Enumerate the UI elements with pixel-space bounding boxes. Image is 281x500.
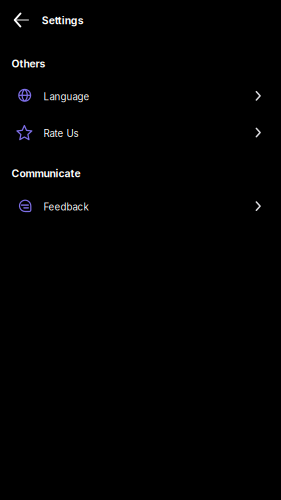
staticText: Rate Us [44,127,79,139]
staticText: Others [11,57,45,70]
button[interactable]: Feedback [0,188,281,224]
staticText: Language [44,91,90,103]
button[interactable]: Language [0,77,281,114]
button[interactable]: Back [8,6,36,34]
button[interactable]: Rate Us [0,114,281,151]
staticText: Feedback [44,201,89,213]
staticText: Communicate [11,167,80,180]
staticText: Settings [42,14,84,27]
